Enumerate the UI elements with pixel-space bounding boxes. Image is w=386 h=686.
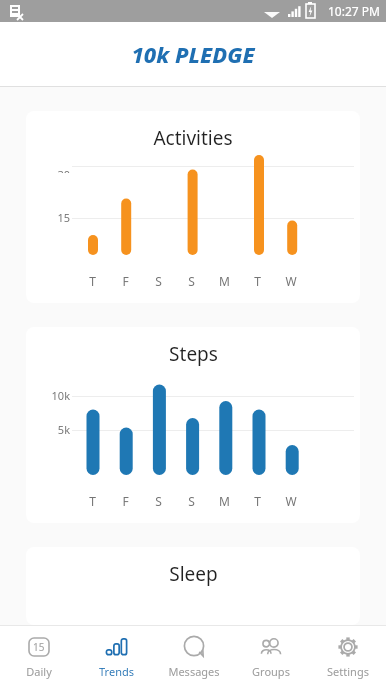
staticText: 5k	[57, 422, 70, 437]
staticText: 15	[57, 210, 70, 225]
button[interactable]: Activities	[26, 111, 360, 303]
staticText: T	[254, 493, 261, 509]
staticText: Groups	[252, 664, 290, 679]
staticText: T	[89, 493, 96, 509]
staticText: 30	[57, 167, 70, 173]
staticText: S	[188, 493, 195, 509]
staticText: T	[89, 273, 96, 289]
button[interactable]: Groups	[232, 626, 309, 686]
staticText: M	[219, 493, 230, 509]
staticText: 10k	[51, 388, 70, 403]
button[interactable]: Messages	[155, 626, 232, 686]
staticText: M	[219, 273, 230, 289]
staticText: W	[285, 273, 297, 289]
staticText: 10:27 PM	[328, 3, 380, 19]
staticText: 10k PLEDGE	[131, 39, 255, 69]
staticText: F	[122, 273, 129, 289]
button[interactable]: Sleep	[26, 547, 360, 625]
staticText: Daily	[26, 664, 52, 679]
staticText: Steps	[169, 341, 218, 367]
staticText: Trends	[99, 664, 134, 679]
button[interactable]: Settings	[309, 626, 386, 686]
staticText: 15	[33, 640, 45, 654]
staticText: Activities	[153, 125, 233, 151]
staticText: S	[155, 273, 162, 289]
staticText: Settings	[327, 664, 369, 679]
button[interactable]: Daily	[0, 626, 78, 686]
staticText: T	[254, 273, 261, 289]
button[interactable]: Steps	[26, 327, 360, 523]
staticText: W	[285, 493, 297, 509]
button[interactable]: Trends	[78, 626, 155, 686]
staticText: S	[188, 273, 195, 289]
staticText: Sleep	[169, 561, 218, 587]
staticText: F	[122, 493, 129, 509]
staticText: S	[155, 493, 162, 509]
staticText: Messages	[168, 664, 220, 679]
